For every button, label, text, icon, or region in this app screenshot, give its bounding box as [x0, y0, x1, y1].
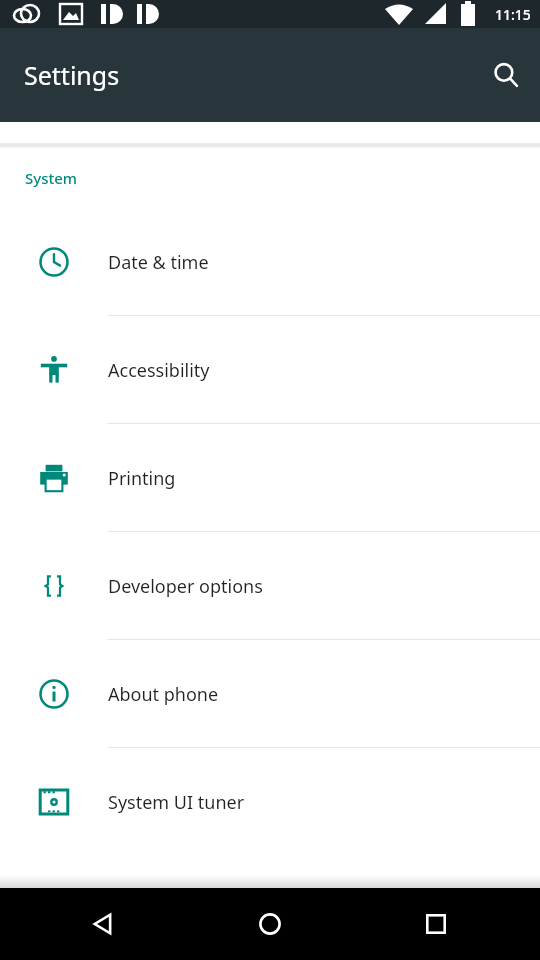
button[interactable]: Accessibility [0, 316, 540, 424]
staticText: 11:15 [495, 5, 531, 24]
staticText: Printing [108, 466, 176, 491]
button[interactable]: System UI tuner [0, 748, 540, 856]
button[interactable]: Developer options [0, 532, 540, 640]
staticText: Date & time [108, 250, 209, 275]
staticText: Developer options [108, 574, 263, 599]
button[interactable]: Recent apps [412, 900, 460, 948]
button[interactable]: Printing [0, 424, 540, 532]
button[interactable]: Search [482, 51, 530, 99]
staticText: Settings [24, 58, 120, 92]
staticText: System UI tuner [108, 790, 245, 815]
button[interactable]: Home [246, 900, 294, 948]
button[interactable]: Back [80, 900, 128, 948]
button[interactable]: Date & time [0, 208, 540, 316]
staticText: About phone [108, 682, 219, 707]
button[interactable]: About phone [0, 640, 540, 748]
staticText: System [25, 168, 78, 188]
staticText: Accessibility [108, 358, 210, 383]
